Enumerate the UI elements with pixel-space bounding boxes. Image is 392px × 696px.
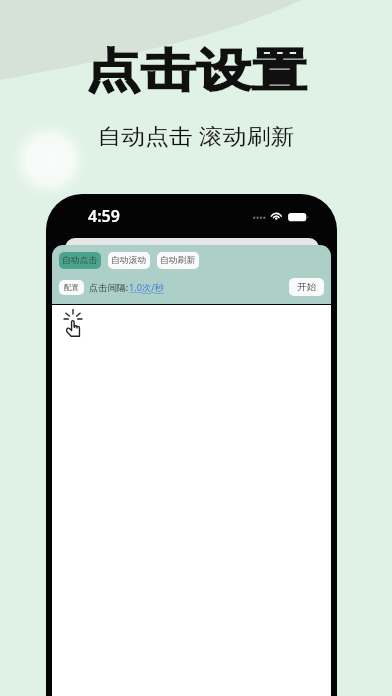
staticText: 自动点击 滚动刷新: [97, 121, 295, 150]
staticText: 1.0次/秒: [129, 281, 164, 294]
staticText: 自动滚动: [111, 255, 147, 266]
staticText: 配置: [64, 283, 79, 292]
staticText: 点击设置: [85, 43, 307, 99]
staticText: 开始: [297, 281, 316, 293]
button[interactable]: 自动滚动: [108, 252, 150, 269]
staticText: 4:59: [88, 205, 120, 227]
other: Auto click cursor: [64, 312, 82, 337]
button[interactable]: 自动点击: [59, 252, 101, 269]
button[interactable]: 自动刷新: [157, 252, 199, 269]
button[interactable]: 开始: [289, 278, 324, 296]
staticText: 点击间隔:: [89, 281, 129, 294]
staticText: 自动点击: [62, 255, 98, 266]
button[interactable]: 配置: [59, 280, 84, 295]
staticText: 自动刷新: [160, 255, 196, 266]
